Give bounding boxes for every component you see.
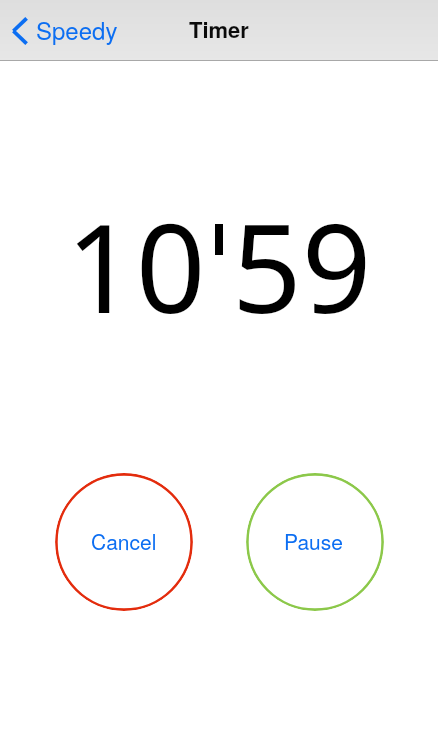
staticText: Pause [284,526,343,556]
staticText: 59 [232,183,372,349]
button[interactable]: Back to Speedy [4,9,118,49]
button[interactable]: Pause [246,473,384,611]
button[interactable]: Cancel [55,473,193,611]
staticText: Cancel [91,526,157,556]
staticText: Speedy [36,12,118,46]
staticText: 10 [66,183,206,349]
staticText: Timer [189,13,249,45]
